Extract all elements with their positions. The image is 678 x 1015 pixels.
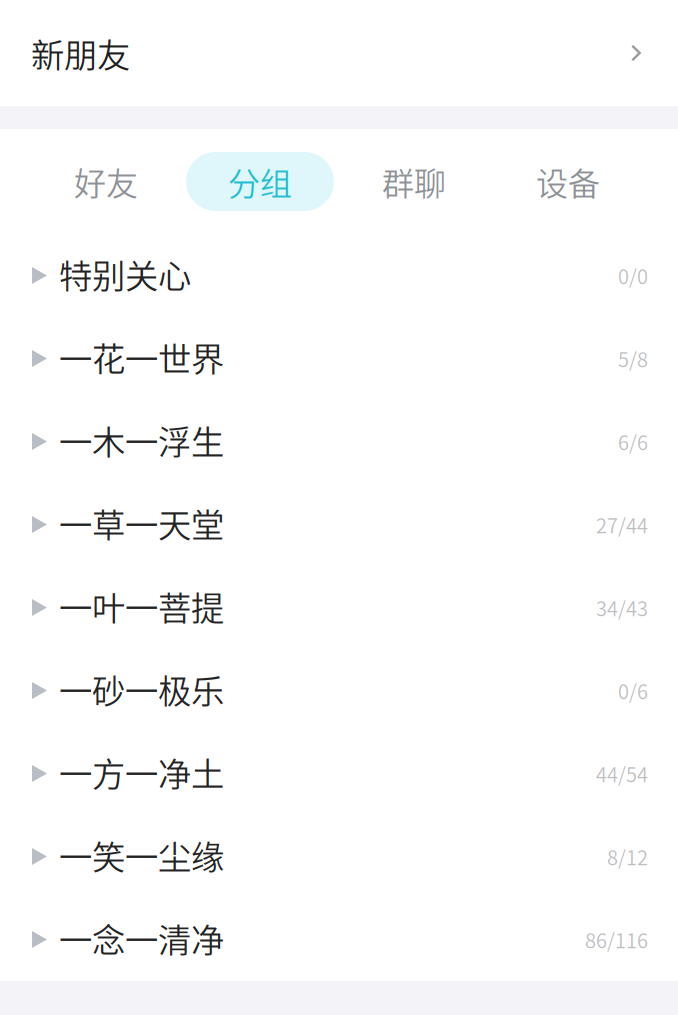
staticText: 34/43 [596,593,648,622]
staticText: 一方一净土 [59,748,224,796]
button[interactable]: 一砂一极乐 [0,649,678,732]
button[interactable]: 一叶一菩提 [0,566,678,649]
staticText: 一笑一尘缘 [59,831,224,879]
staticText: 一草一天堂 [59,499,224,547]
staticText: 一叶一菩提 [59,582,224,630]
button[interactable]: 新朋友 [0,0,678,106]
staticText: 分组 [228,158,292,205]
button[interactable]: 一念一清净 [0,898,678,981]
button[interactable]: 一方一净土 [0,732,678,815]
staticText: 一砂一极乐 [59,665,224,713]
staticText: 一念一清净 [59,914,224,962]
button[interactable]: 一草一天堂 [0,483,678,566]
staticText: 群聊 [382,158,446,205]
staticText: 好友 [74,158,138,205]
staticText: 5/8 [618,344,648,373]
staticText: 一木一浮生 [59,416,224,464]
staticText: 0/6 [618,676,648,705]
button[interactable]: 一花一世界 [0,317,678,400]
staticText: 44/54 [596,759,648,788]
button[interactable]: 分组 [183,152,337,211]
button[interactable]: 设备 [491,152,645,211]
staticText: 新朋友 [31,29,130,77]
staticText: 设备 [536,158,600,205]
staticText: 86/116 [585,925,648,954]
button[interactable]: 好友 [29,152,183,211]
staticText: 0/0 [618,261,648,290]
staticText: 27/44 [596,510,648,539]
button[interactable]: 群聊 [337,152,491,211]
staticText: 一花一世界 [59,333,224,381]
staticText: 8/12 [607,842,648,871]
button[interactable]: 特别关心 [0,234,678,317]
staticText: 6/6 [618,427,648,456]
button[interactable]: 一笑一尘缘 [0,815,678,898]
button[interactable]: 一木一浮生 [0,400,678,483]
staticText: 特别关心 [59,250,191,298]
